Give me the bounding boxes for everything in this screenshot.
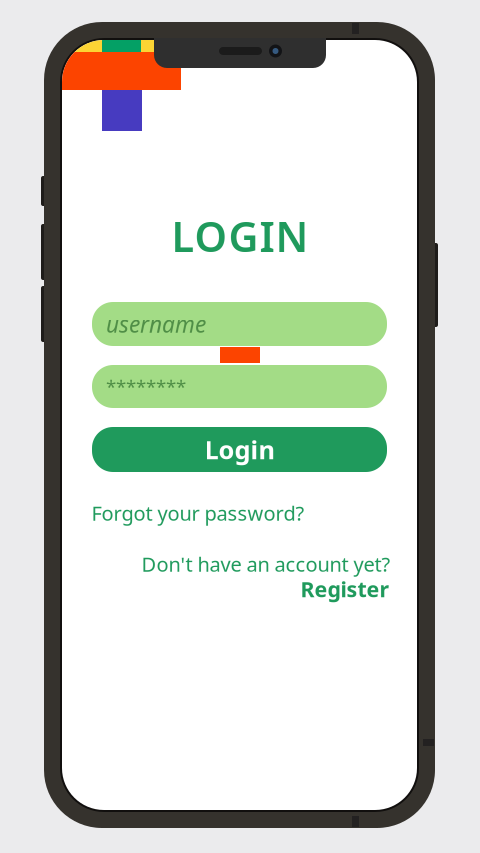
staticText: ******** (106, 374, 186, 399)
staticText: username (106, 309, 206, 339)
staticText: Don't have an account yet? (141, 551, 390, 577)
button[interactable]: Register (300, 575, 389, 603)
button[interactable]: Forgot your password? (91, 500, 304, 526)
staticText: Login (204, 433, 274, 466)
staticText: Register (300, 575, 389, 603)
staticText: Forgot your password? (91, 500, 304, 526)
staticText: LOGIN (171, 209, 308, 263)
button[interactable]: Login (92, 427, 387, 472)
